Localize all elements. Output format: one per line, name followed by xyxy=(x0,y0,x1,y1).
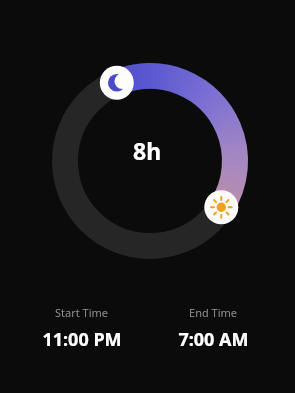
staticText: 7:00 AM xyxy=(178,327,249,352)
staticText: Start Time xyxy=(55,305,108,320)
staticText: 8h xyxy=(133,135,162,166)
button[interactable]: Sleep duration ring xyxy=(0,0,295,300)
staticText: End Time xyxy=(189,305,237,320)
button[interactable]: End Time xyxy=(147,305,279,352)
button[interactable]: Start Time xyxy=(16,305,147,352)
staticText: 11:00 PM xyxy=(42,327,122,352)
